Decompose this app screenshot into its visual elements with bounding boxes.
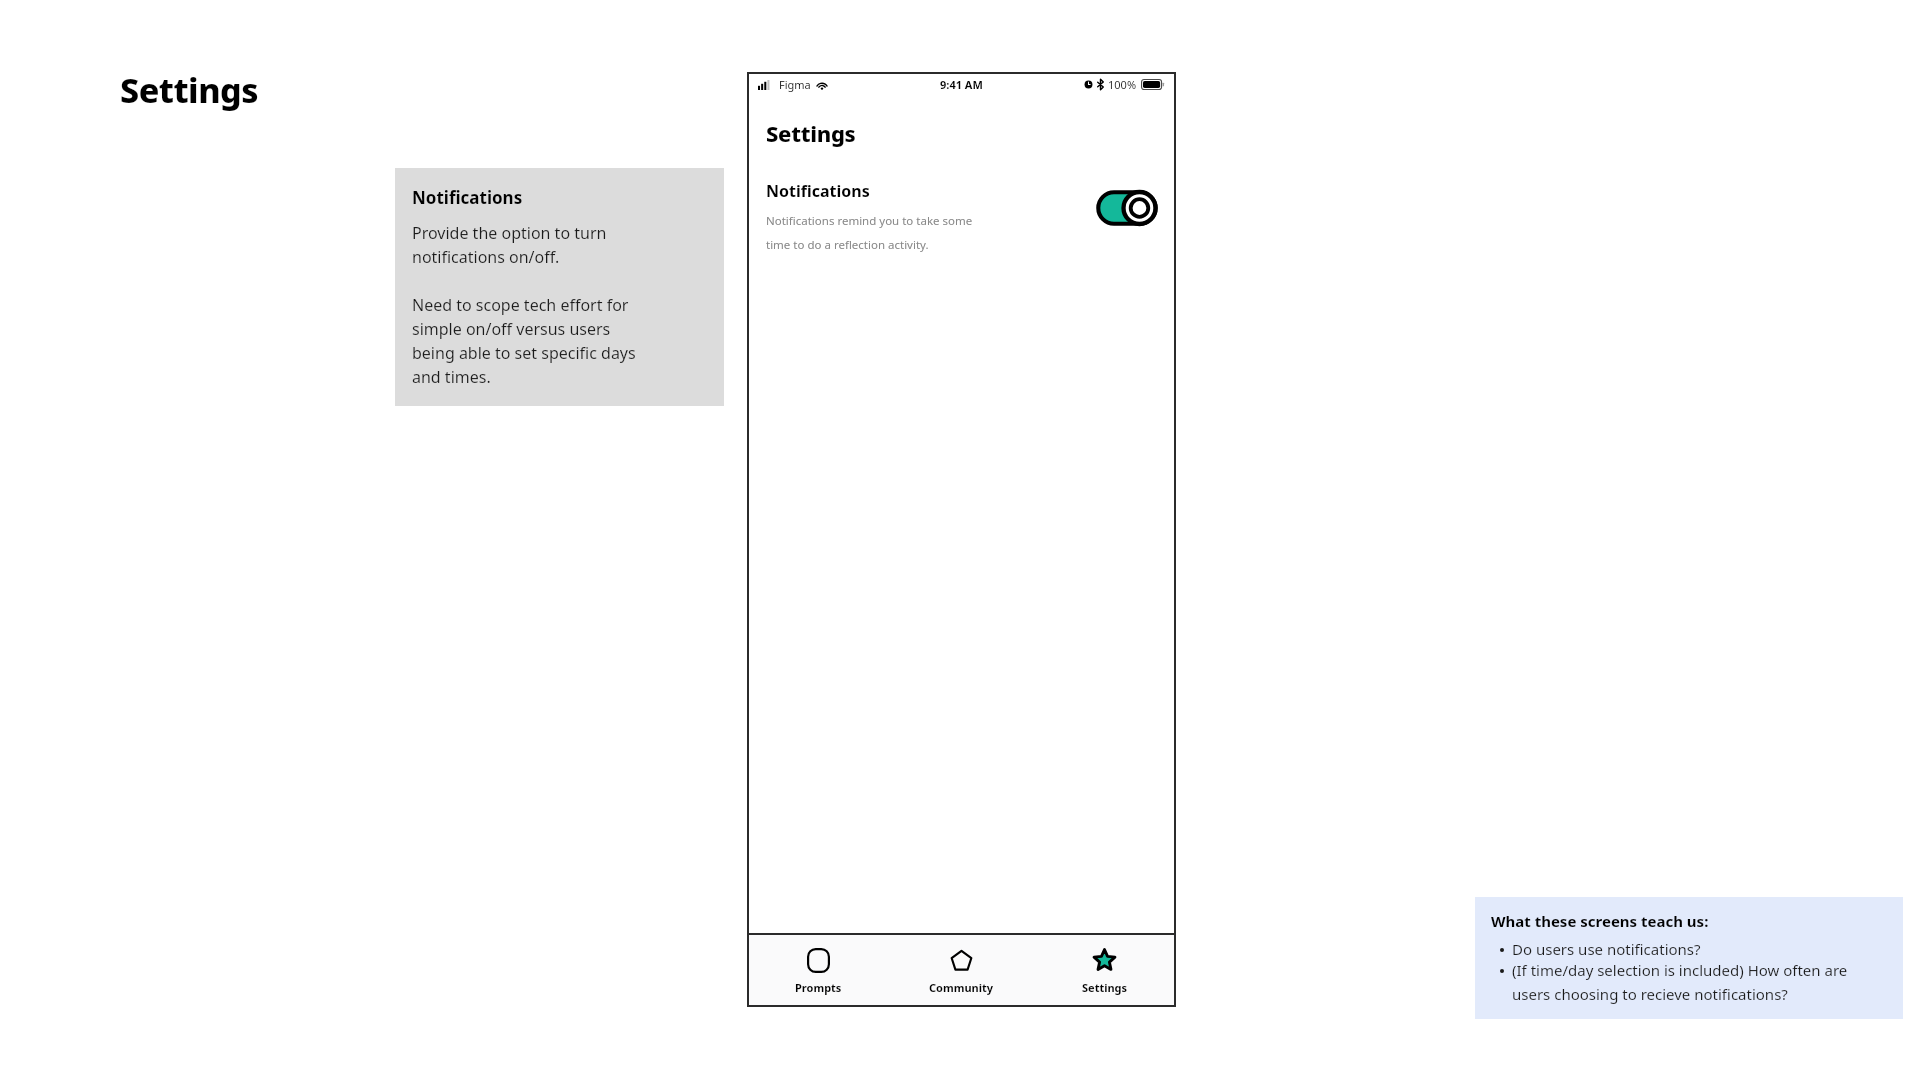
staticText: What these screens teach us: (1491, 911, 1709, 931)
staticText: 9:41 AM (940, 77, 983, 92)
staticText: Figma (779, 77, 811, 92)
staticText: Need to scope tech effort for simple on/… (412, 292, 636, 388)
staticText: (If time/day selection is included) How … (1512, 960, 1887, 1004)
staticText: Prompts (795, 980, 842, 995)
staticText: Provide the option to turn notifications… (412, 220, 607, 268)
button[interactable]: Settings (1033, 941, 1176, 1001)
staticText: 100% (1108, 77, 1137, 92)
staticText: Settings (766, 118, 856, 148)
button[interactable]: Toggle notifications (1097, 191, 1157, 225)
button[interactable]: Prompts (747, 942, 890, 1001)
staticText: Notifications remind you to take some ti… (766, 213, 973, 252)
staticText: Settings (1082, 980, 1128, 995)
staticText: Notifications (766, 180, 870, 202)
staticText: Notifications (412, 186, 523, 209)
staticText: Community (929, 980, 994, 995)
staticText: Do users use notifications? (1512, 939, 1701, 959)
button[interactable]: Community (890, 942, 1033, 1001)
button[interactable]: Notifications (747, 180, 1176, 252)
staticText: Settings (120, 67, 259, 113)
